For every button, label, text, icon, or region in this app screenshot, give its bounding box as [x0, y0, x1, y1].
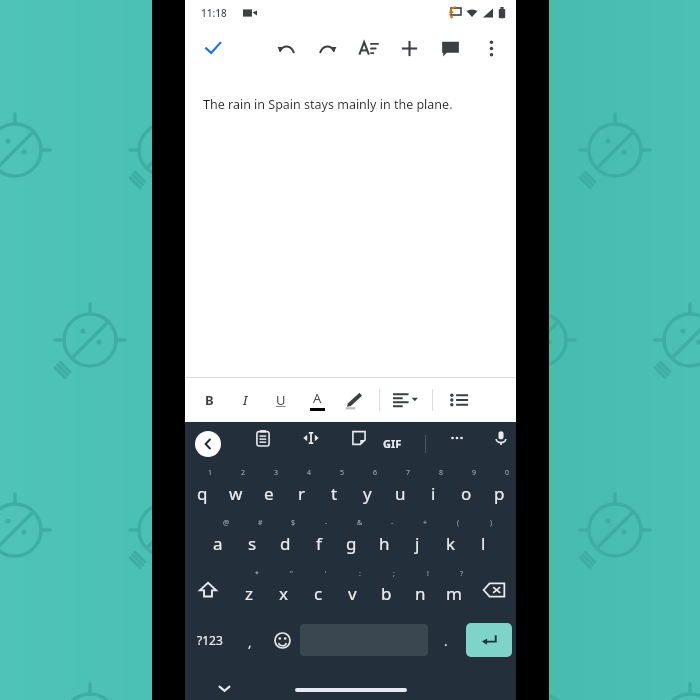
button[interactable]: l [467, 515, 500, 565]
staticText: c [314, 582, 323, 605]
staticText: o [461, 482, 472, 505]
staticText: r [298, 482, 306, 505]
staticText: - [325, 518, 328, 528]
button[interactable]: u [384, 465, 417, 515]
button[interactable]: q [185, 465, 219, 515]
button[interactable]: ?123 [185, 615, 234, 665]
staticText: . [444, 632, 448, 650]
staticText: g [346, 532, 357, 555]
button[interactable]: Underline [263, 382, 299, 418]
staticText: 4 [307, 468, 312, 478]
staticText: 5 [340, 468, 345, 478]
button[interactable]: Bold [191, 382, 227, 418]
button[interactable]: Redo [307, 28, 348, 69]
staticText: $ [291, 518, 296, 528]
button[interactable]: b [369, 565, 403, 615]
button[interactable]: d [269, 515, 302, 565]
staticText: 1 [208, 468, 213, 478]
button[interactable]: List [441, 382, 477, 418]
staticText: 7 [406, 468, 411, 478]
staticText: - [391, 518, 394, 528]
staticText: f [316, 532, 322, 555]
button[interactable]: Highlight [335, 382, 371, 418]
button[interactable]: More [442, 423, 472, 453]
button[interactable]: Italic [227, 382, 263, 418]
button[interactable]: k [434, 515, 467, 565]
staticText: B [205, 391, 214, 409]
staticText: ; [393, 569, 395, 579]
button[interactable]: g [335, 515, 368, 565]
button[interactable]: s [235, 515, 269, 565]
staticText: w [229, 482, 243, 505]
button[interactable]: Shift [185, 565, 231, 615]
button[interactable]: Voice input [486, 423, 516, 453]
button[interactable]: w [219, 465, 252, 515]
staticText: 6 [373, 468, 378, 478]
button[interactable]: i [417, 465, 450, 515]
button[interactable]: Insert [389, 28, 430, 69]
button[interactable]: a [201, 515, 235, 565]
button[interactable]: x [266, 565, 301, 615]
button[interactable]: More options [471, 28, 512, 69]
staticText: 8 [439, 468, 444, 478]
button[interactable]: Period [430, 615, 462, 665]
staticText: # [258, 518, 263, 528]
staticText: e [264, 482, 274, 505]
button[interactable]: t [318, 465, 351, 515]
staticText: & [357, 518, 363, 528]
button[interactable]: Undo [266, 28, 307, 69]
button[interactable]: Comment [430, 28, 471, 69]
button[interactable]: GIF [383, 436, 402, 451]
staticText: 2 [241, 468, 246, 478]
staticText: * [255, 569, 259, 579]
staticText: ? [460, 569, 464, 579]
button[interactable]: f [302, 515, 335, 565]
button[interactable]: e [252, 465, 285, 515]
button[interactable]: Comma [234, 615, 266, 665]
button[interactable]: Back [195, 431, 221, 457]
staticText: h [379, 532, 390, 555]
button[interactable]: h [368, 515, 401, 565]
staticText: ) [490, 518, 493, 528]
button[interactable]: p [483, 465, 516, 515]
staticText: x [279, 582, 288, 605]
staticText: , [248, 633, 252, 651]
staticText: 11:18 [201, 6, 227, 20]
button[interactable]: o [450, 465, 483, 515]
staticText: p [494, 482, 505, 505]
staticText: 9 [472, 468, 477, 478]
staticText: t [331, 482, 338, 505]
staticText: n [415, 582, 426, 605]
button[interactable]: Alignment [386, 382, 426, 418]
button[interactable]: z [231, 565, 266, 615]
staticText: v [348, 582, 357, 605]
button[interactable]: Text color [299, 382, 335, 418]
button[interactable]: Hide keyboard [213, 677, 235, 699]
staticText: I [243, 391, 248, 409]
button[interactable]: The rain in Spain stays mainly in the pl… [185, 70, 516, 377]
staticText: 0 [505, 468, 510, 478]
button[interactable]: m [437, 565, 471, 615]
button[interactable]: Enter [466, 623, 512, 657]
button[interactable]: c [301, 565, 335, 615]
button[interactable]: Emoji [266, 615, 298, 665]
button[interactable]: j [401, 515, 434, 565]
staticText: y [363, 482, 372, 505]
button[interactable]: r [285, 465, 318, 515]
staticText: z [245, 582, 253, 605]
staticText: The rain in Spain stays mainly in the pl… [203, 96, 453, 113]
button[interactable]: v [335, 565, 369, 615]
button[interactable]: Backspace [471, 565, 516, 615]
button[interactable]: Text editing [296, 423, 326, 453]
button[interactable]: Clipboard [248, 423, 278, 453]
button[interactable]: Stickers [344, 423, 374, 453]
button[interactable]: y [351, 465, 384, 515]
staticText: @ [223, 518, 230, 528]
button[interactable]: Done [197, 32, 229, 64]
button[interactable]: n [403, 565, 437, 615]
staticText: A [313, 389, 322, 407]
staticText: d [280, 532, 291, 555]
staticText: i [431, 482, 436, 505]
button[interactable]: Text formatting [348, 28, 389, 69]
